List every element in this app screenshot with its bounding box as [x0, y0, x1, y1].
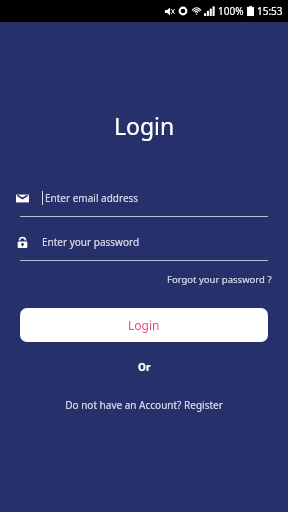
button[interactable]: Forgot your password ?: [163, 270, 276, 289]
button[interactable]: Password: [0, 231, 288, 261]
button[interactable]: Login: [20, 308, 268, 342]
staticText: Login: [128, 317, 160, 333]
staticText: Forgot your password ?: [167, 273, 272, 286]
button[interactable]: Email: [0, 187, 288, 217]
staticText: Or: [138, 360, 151, 374]
button[interactable]: Do not have an Account? Register: [57, 394, 231, 416]
staticText: 15:53: [257, 4, 283, 18]
staticText: Do not have an Account? Register: [65, 398, 223, 412]
other: Email: [16, 192, 29, 205]
other: Password: [16, 236, 29, 249]
staticText: Login: [114, 110, 175, 141]
staticText: 100%: [218, 4, 244, 18]
staticText: Enter your password: [42, 235, 140, 249]
staticText: Enter email address: [45, 191, 139, 205]
